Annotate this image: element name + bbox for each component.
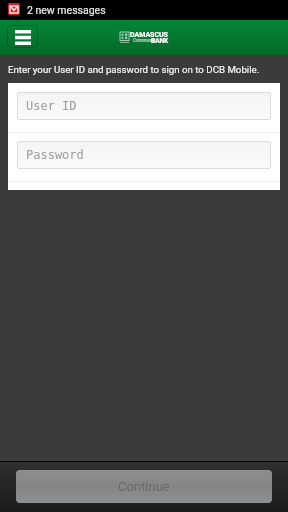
button[interactable]: Password bbox=[17, 141, 271, 169]
staticText: Enter your User ID and password to sign … bbox=[8, 64, 260, 75]
staticText: 2 new messages bbox=[27, 4, 106, 16]
staticText: Password bbox=[26, 148, 84, 162]
staticText: Community bbox=[133, 38, 157, 43]
staticText: Continue bbox=[118, 479, 170, 494]
staticText: BANK bbox=[151, 37, 169, 45]
button[interactable]: User ID bbox=[17, 92, 271, 120]
staticText: DAMASCUS bbox=[130, 31, 168, 39]
button[interactable]: Continue bbox=[16, 470, 272, 503]
staticText: User ID bbox=[26, 99, 77, 113]
button[interactable]: Open navigation menu bbox=[7, 25, 38, 48]
other: 2 new messages bbox=[8, 3, 20, 15]
